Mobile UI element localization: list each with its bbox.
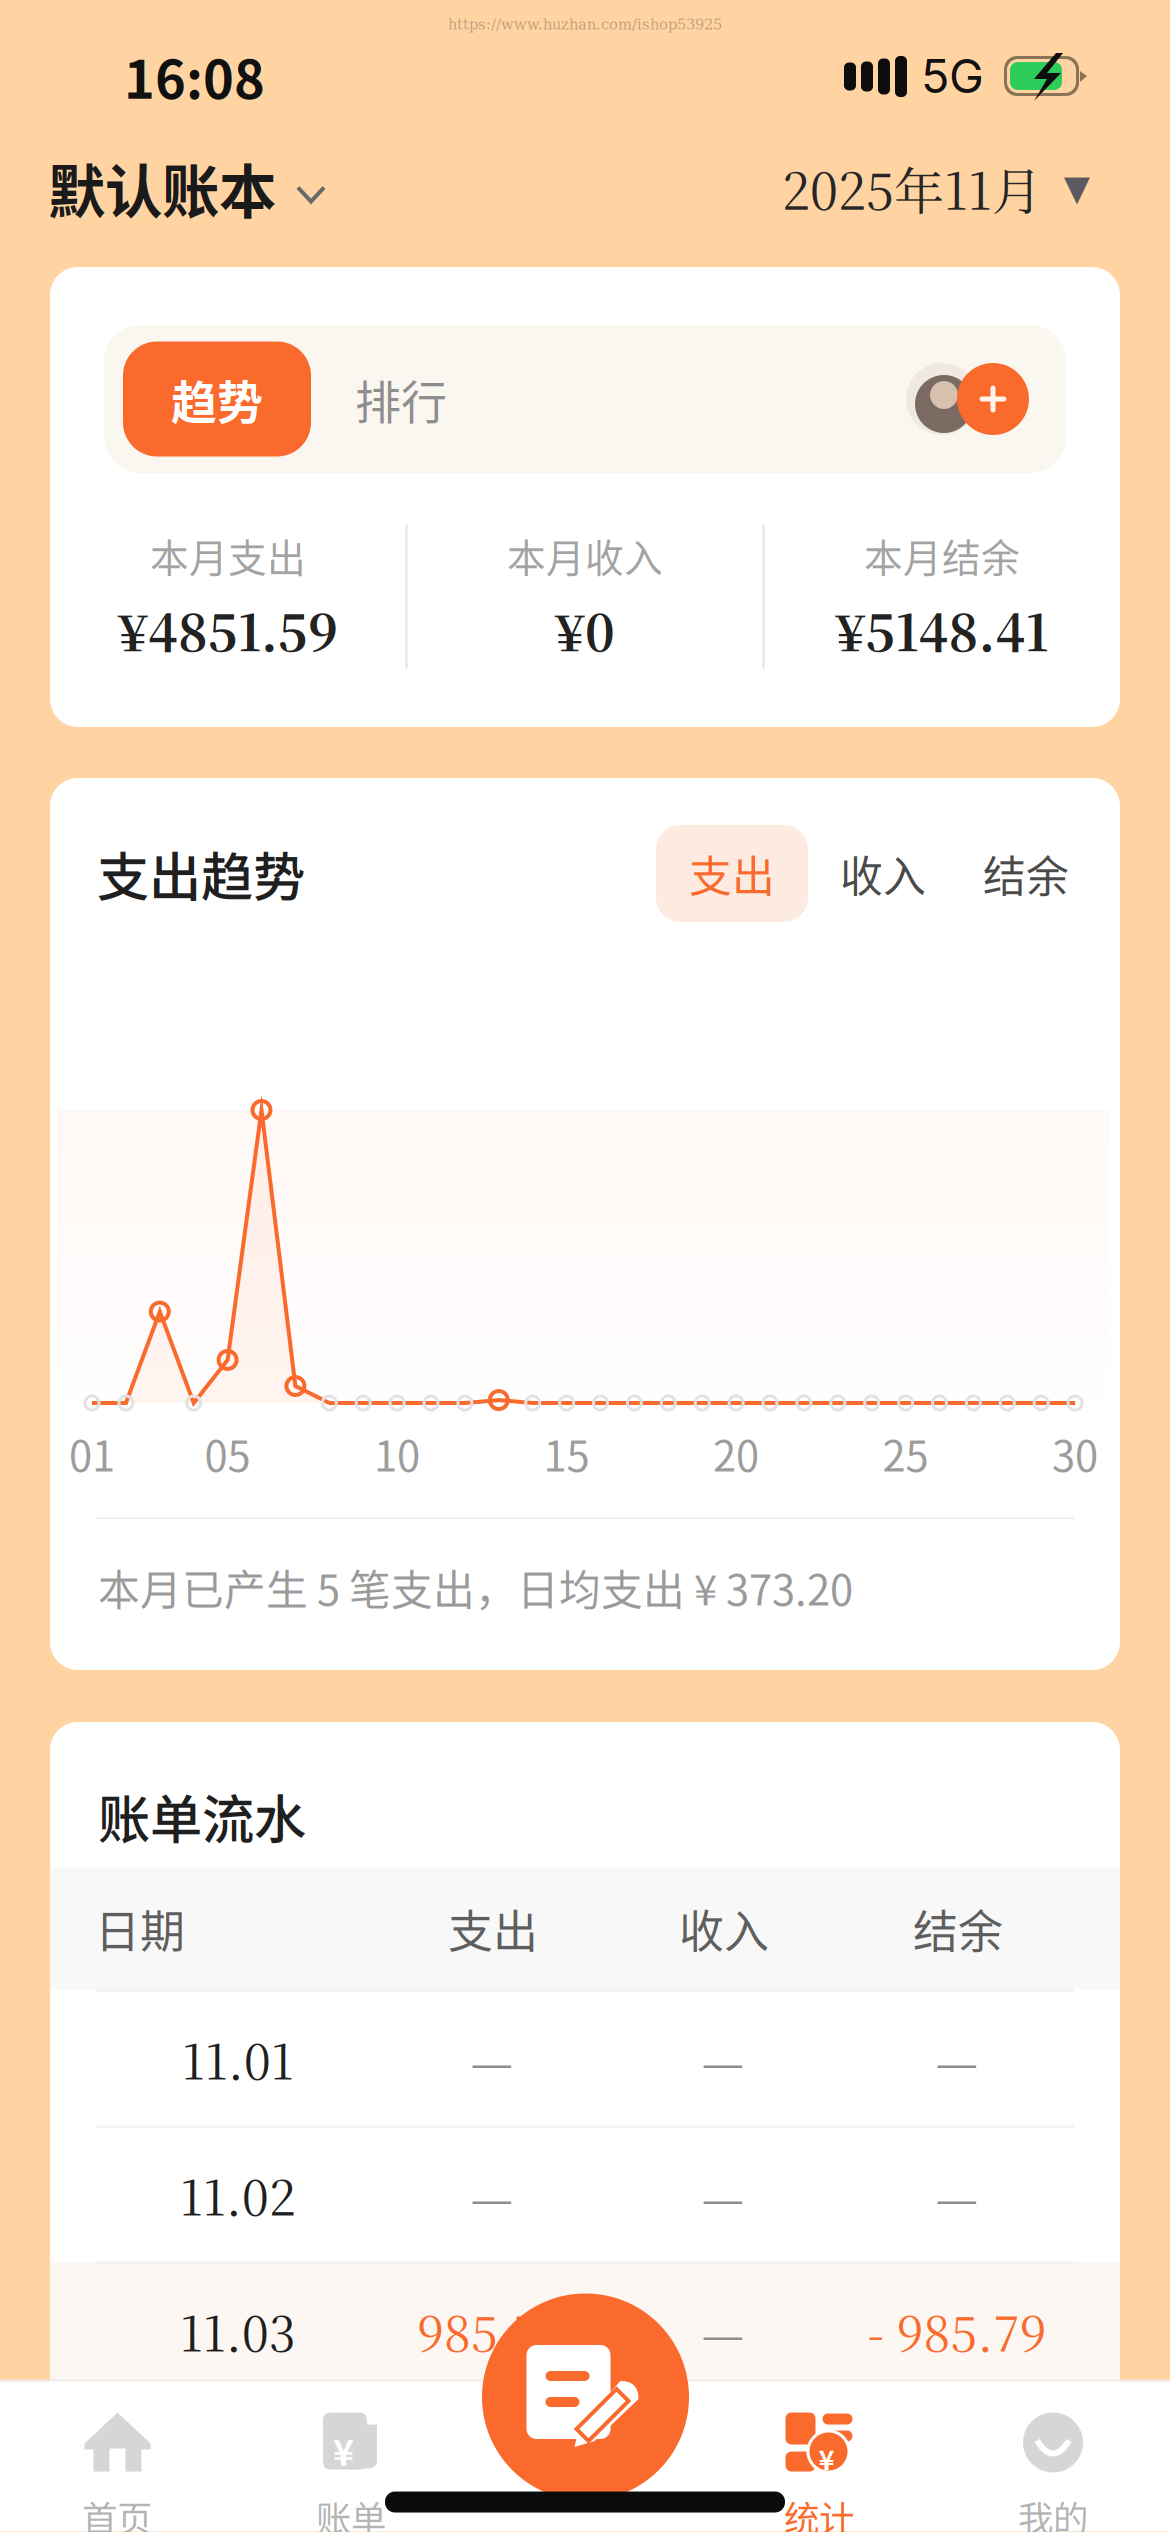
staticText: ¥ [333, 2424, 354, 2476]
staticText: 收入 [679, 1896, 769, 1961]
button[interactable]: 2025年11月 [782, 152, 1090, 224]
staticText: 25 [883, 1423, 929, 1483]
staticText: 11.02 [180, 2160, 296, 2229]
staticText: 985.79 [417, 2296, 567, 2365]
staticText: 账单 [316, 2490, 386, 2532]
staticText: 结余 [913, 1896, 1003, 1961]
staticText: 结余 [983, 842, 1069, 904]
staticText: — [701, 2160, 744, 2229]
staticText: — [701, 2024, 744, 2093]
staticText: 首页 [82, 2490, 152, 2532]
staticText: 20 [713, 1423, 759, 1483]
staticText: 01 [69, 1423, 115, 1483]
button[interactable]: 排行 [311, 341, 491, 456]
button[interactable]: 11.02 [50, 2126, 1120, 2262]
staticText: ¥0 [555, 593, 615, 665]
staticText: 支出 [689, 842, 775, 904]
staticText: 本月已产生 5 笔支出，日均支出 ¥ 373.20 [98, 1557, 853, 1617]
staticText: - 985.79 [867, 2296, 1046, 2365]
button[interactable]: 首页 [0, 2380, 234, 2532]
staticText: 05 [205, 1423, 251, 1483]
staticText: 本月支出 [150, 527, 306, 583]
button[interactable]: 结余 [958, 825, 1094, 922]
button[interactable]: 支出 [656, 825, 808, 922]
staticText: 统计 [784, 2490, 854, 2532]
staticText: 日期 [95, 1896, 185, 1961]
staticText: 11.03 [180, 2296, 296, 2365]
button[interactable]: 默认账本 [48, 146, 326, 230]
staticText: https://www.huzhan.com/ishop53925 [448, 16, 722, 33]
staticText: — [470, 2024, 513, 2093]
staticText: 15 [544, 1423, 590, 1483]
button[interactable]: 我的 [936, 2380, 1170, 2532]
staticText: 30 [1052, 1423, 1098, 1483]
button[interactable]: 11.01 [50, 1990, 1120, 2126]
staticText: 默认账本 [48, 146, 276, 230]
button[interactable]: ¥ [702, 2380, 936, 2532]
staticText: — [470, 2160, 513, 2229]
staticText: 16:08 [124, 38, 265, 114]
staticText: — [935, 2024, 978, 2093]
staticText: 我的 [1018, 2490, 1088, 2532]
staticText: 支出趋势 [97, 836, 305, 911]
staticText: 排行 [355, 366, 447, 432]
staticText: ¥5148.41 [835, 593, 1048, 665]
button[interactable]: ¥ [234, 2380, 468, 2532]
staticText: 趋势 [171, 366, 263, 432]
staticText: — [935, 2160, 978, 2229]
staticText: 2025年11月 [782, 152, 1042, 224]
button[interactable]: New record [482, 2293, 689, 2500]
staticText: 支出 [448, 1896, 538, 1961]
staticText: 本月结余 [864, 527, 1020, 583]
button[interactable]: Add member [957, 363, 1029, 435]
staticText: 5G [921, 48, 984, 104]
button[interactable]: 11.03 [50, 2262, 1120, 2398]
staticText: ¥4851.59 [118, 593, 338, 665]
button[interactable]: 趋势 [123, 341, 311, 456]
staticText: 账单流水 [98, 1778, 306, 1854]
staticText: ¥ [818, 2438, 834, 2478]
staticText: 11.01 [182, 2024, 294, 2093]
staticText: 10 [374, 1423, 420, 1483]
staticText: 收入 [840, 842, 926, 904]
button[interactable]: 收入 [808, 825, 958, 922]
staticText: 本月收入 [507, 527, 663, 583]
staticText: — [701, 2296, 744, 2365]
